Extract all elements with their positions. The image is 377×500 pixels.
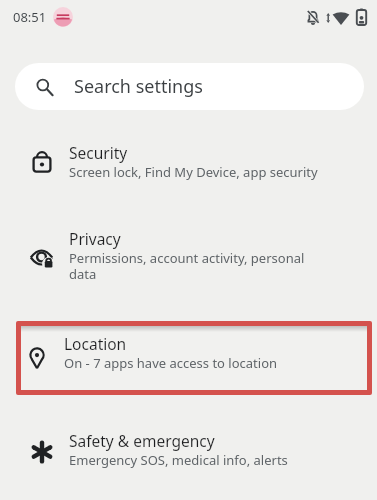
staticText: Search settings: [74, 74, 203, 99]
staticText: Emergency SOS, medical info, alerts: [69, 451, 288, 469]
button[interactable]: Search settings: [15, 63, 364, 110]
staticText: Privacy: [69, 228, 121, 249]
button[interactable]: Location: [16, 321, 372, 395]
button[interactable]: Safety & emergency: [0, 421, 377, 477]
button[interactable]: Privacy: [0, 224, 377, 286]
staticText: Screen lock, Find My Device, app securit…: [69, 163, 318, 181]
staticText: Security: [69, 142, 128, 163]
staticText: Permissions, account activity, personal …: [69, 249, 305, 283]
staticText: On - 7 apps have access to location: [64, 354, 278, 372]
staticText: Safety & emergency: [69, 430, 215, 451]
staticText: Location: [64, 333, 127, 354]
staticText: 08:51: [13, 8, 47, 26]
button[interactable]: Security: [0, 135, 377, 187]
